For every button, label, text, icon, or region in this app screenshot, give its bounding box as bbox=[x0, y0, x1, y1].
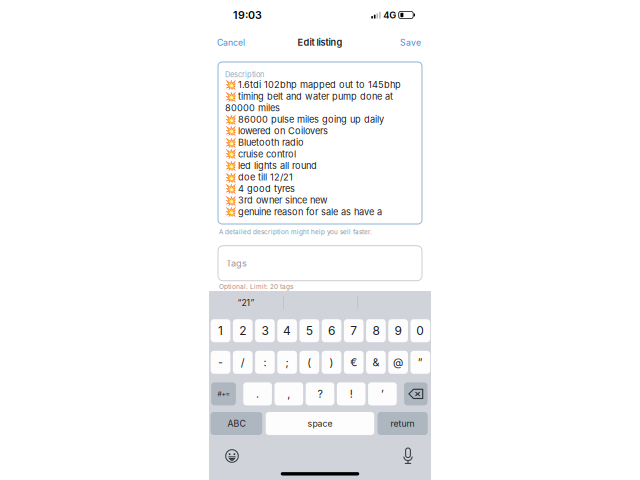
button[interactable]: 2 bbox=[233, 319, 252, 342]
staticText: 80000 miles bbox=[225, 102, 280, 113]
button[interactable]: ’ bbox=[368, 382, 397, 405]
button[interactable]: 4 bbox=[277, 319, 297, 342]
staticText: ’ bbox=[381, 387, 384, 400]
button[interactable]: Emoji keyboard bbox=[219, 445, 245, 467]
staticText: 💥 3rd owner since new bbox=[225, 195, 328, 206]
staticText: space bbox=[307, 418, 332, 429]
staticText: 💥 4 good tyres bbox=[225, 183, 295, 194]
staticText: ( bbox=[307, 356, 311, 369]
staticText: 6 bbox=[328, 323, 335, 338]
staticText: “21” bbox=[237, 297, 254, 308]
staticText: 💥 doe till 12/21 bbox=[225, 172, 293, 183]
button[interactable]: 7 bbox=[344, 319, 363, 342]
staticText: / bbox=[241, 356, 245, 369]
staticText: & bbox=[372, 356, 379, 369]
staticText: Description bbox=[225, 70, 264, 79]
staticText: ; bbox=[286, 356, 289, 369]
button[interactable]: 5 bbox=[299, 319, 319, 342]
button[interactable]: 6 bbox=[322, 319, 341, 342]
button[interactable]: € bbox=[344, 351, 363, 374]
button[interactable]: Delete bbox=[404, 382, 427, 405]
button[interactable]: 0 bbox=[410, 319, 430, 342]
button[interactable]: . bbox=[243, 382, 272, 405]
staticText: 0 bbox=[416, 323, 424, 338]
staticText: 1 bbox=[218, 323, 223, 338]
button[interactable]: Dictation bbox=[395, 445, 421, 467]
button[interactable]: ( bbox=[299, 351, 319, 374]
staticText: . bbox=[256, 387, 259, 400]
staticText: Save bbox=[400, 37, 421, 48]
staticText: € bbox=[350, 356, 357, 369]
staticText: - bbox=[218, 356, 223, 369]
staticText: 4 bbox=[283, 323, 291, 338]
button[interactable]: #+= bbox=[211, 382, 236, 405]
button[interactable]: : bbox=[255, 351, 275, 374]
button[interactable]: 8 bbox=[366, 319, 386, 342]
staticText: 7 bbox=[350, 323, 357, 338]
staticText: A detailed description might help you se… bbox=[219, 228, 372, 236]
button[interactable]: space bbox=[266, 412, 374, 435]
staticText: 💥 1.6tdi 102bhp mapped out to 145bhp bbox=[225, 79, 401, 90]
staticText: 2 bbox=[239, 323, 246, 338]
button[interactable]: “21” bbox=[209, 291, 283, 314]
staticText: 💥 led lights all round bbox=[225, 160, 317, 171]
staticText: 5 bbox=[306, 323, 313, 338]
staticText: return bbox=[391, 418, 415, 429]
staticText: 8 bbox=[372, 323, 379, 338]
staticText: 💥 Bluetooth radio bbox=[225, 137, 304, 148]
staticText: 💥 86000 pulse miles going up daily bbox=[225, 114, 384, 125]
staticText: ) bbox=[329, 356, 333, 369]
staticText: 3 bbox=[261, 323, 268, 338]
button[interactable]: , bbox=[274, 382, 303, 405]
staticText: 19:03 bbox=[233, 8, 262, 21]
button[interactable]: ? bbox=[306, 382, 334, 405]
staticText: Cancel bbox=[217, 37, 245, 48]
button[interactable]: Save bbox=[394, 32, 431, 53]
staticText: ABC bbox=[227, 418, 245, 429]
button[interactable]: @ bbox=[388, 351, 408, 374]
button[interactable]: ! bbox=[337, 382, 365, 405]
staticText: ? bbox=[317, 387, 322, 400]
button[interactable]: ” bbox=[410, 351, 430, 374]
button[interactable]: / bbox=[233, 351, 252, 374]
button[interactable]: 1 bbox=[211, 319, 230, 342]
staticText: Optional. Limit: 20 tags bbox=[219, 283, 293, 290]
staticText: ! bbox=[350, 387, 353, 400]
staticText: Tags bbox=[226, 258, 247, 269]
staticText: 4G bbox=[383, 9, 396, 21]
button[interactable]: return bbox=[377, 412, 428, 435]
staticText: 💥 timing belt and water pump done at bbox=[225, 91, 393, 102]
staticText: 💥 genuine reason for sale as have a bbox=[225, 206, 382, 217]
staticText: ” bbox=[418, 356, 423, 369]
staticText: : bbox=[263, 356, 266, 369]
staticText: 9 bbox=[395, 323, 402, 338]
button[interactable]: - bbox=[211, 351, 230, 374]
button[interactable]: & bbox=[366, 351, 386, 374]
staticText: #+= bbox=[217, 390, 229, 398]
button[interactable]: 9 bbox=[388, 319, 408, 342]
staticText: 💥 cruise control bbox=[225, 148, 296, 160]
staticText: Edit listing bbox=[297, 37, 342, 48]
staticText: 💥 lowered on Coilovers bbox=[225, 125, 328, 137]
button[interactable]: ABC bbox=[211, 412, 262, 435]
button[interactable]: 3 bbox=[255, 319, 275, 342]
button[interactable]: ) bbox=[322, 351, 341, 374]
button[interactable]: ; bbox=[277, 351, 297, 374]
button[interactable]: Cancel bbox=[209, 32, 251, 53]
staticText: @ bbox=[393, 356, 403, 369]
staticText: , bbox=[287, 387, 290, 400]
